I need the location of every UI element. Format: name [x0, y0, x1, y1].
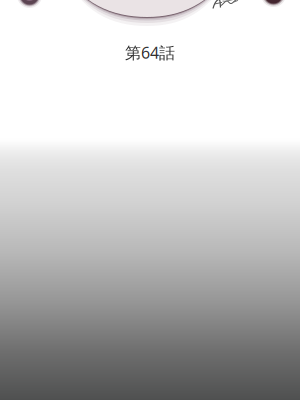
staticText: 第64話 — [125, 42, 175, 63]
